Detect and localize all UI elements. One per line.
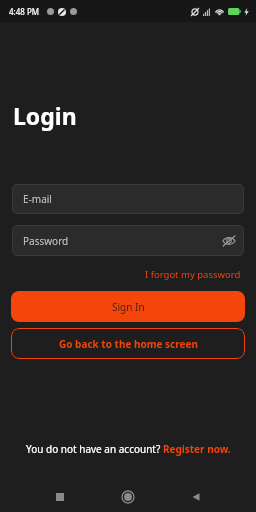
button[interactable]: Home xyxy=(108,482,148,512)
button[interactable]: E-mail xyxy=(12,184,244,214)
button[interactable]: Show password xyxy=(213,225,244,256)
staticText: Password xyxy=(23,234,69,248)
button[interactable]: Go back to the home screen xyxy=(11,328,245,359)
button[interactable]: Sign In xyxy=(11,291,245,322)
staticText: Login xyxy=(13,100,77,131)
staticText: Go back to the home screen xyxy=(59,337,198,351)
staticText: Sign In xyxy=(112,300,145,314)
button[interactable]: You do not have an account? Register now… xyxy=(24,440,233,458)
staticText: 4:48 PM xyxy=(9,6,40,17)
staticText: E-mail xyxy=(23,192,52,206)
button[interactable]: Password xyxy=(12,225,244,256)
button[interactable]: Back xyxy=(176,482,216,512)
button[interactable]: Recents xyxy=(40,482,80,512)
button[interactable]: I forgot my password xyxy=(143,266,243,283)
